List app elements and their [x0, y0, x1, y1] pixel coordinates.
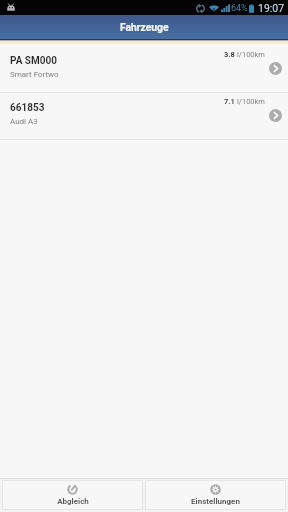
staticText: PA SM000 — [10, 55, 57, 67]
staticText: Smart Fortwo — [10, 70, 59, 79]
other: Details — [269, 62, 282, 75]
staticText: l/100km — [237, 50, 265, 59]
staticText: l/100km — [237, 97, 265, 106]
staticText: Audi A3 — [10, 117, 38, 126]
staticText: 19:07 — [258, 2, 285, 14]
button[interactable]: Abgleich — [2, 480, 143, 510]
staticText: Fahrzeuge — [120, 21, 169, 33]
staticText: Einstellungen — [191, 497, 240, 506]
button[interactable]: PA SM000 — [0, 46, 288, 93]
staticText: 661853 — [10, 102, 45, 114]
staticText: 7.1 — [224, 97, 235, 106]
other: Details — [269, 109, 282, 122]
staticText: Abgleich — [57, 497, 89, 506]
button[interactable]: 661853 — [0, 93, 288, 140]
staticText: 3.8 — [224, 50, 235, 59]
button[interactable]: Einstellungen — [145, 480, 286, 510]
staticText: 64% — [231, 3, 248, 14]
